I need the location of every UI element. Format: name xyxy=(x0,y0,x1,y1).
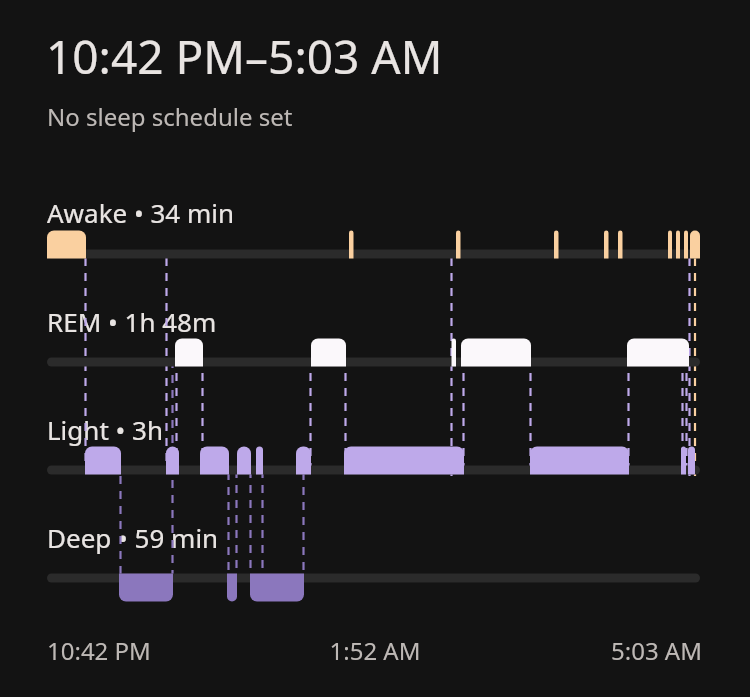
button[interactable]: Sleep stages chart xyxy=(0,0,750,697)
